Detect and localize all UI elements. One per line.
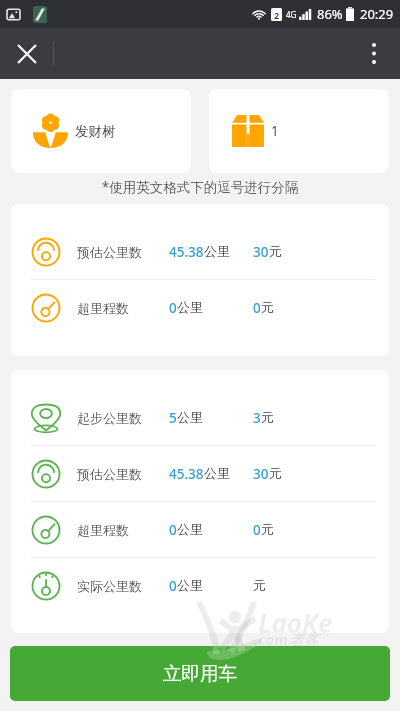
staticText: 20:29: [360, 5, 394, 23]
staticText: 公里: [177, 577, 203, 593]
staticText: 1: [271, 122, 279, 140]
staticText: 30: [253, 243, 269, 261]
staticText: *使用英文格式下的逗号进行分隔: [11, 178, 389, 196]
staticText: 元: [261, 299, 274, 315]
staticText: 0: [253, 521, 261, 539]
staticText: 公里: [177, 521, 203, 537]
staticText: 0: [169, 521, 177, 539]
staticText: 起步公里数: [77, 410, 142, 426]
button[interactable]: 预估公里数: [11, 224, 389, 279]
staticText: 公里: [204, 243, 230, 259]
button[interactable]: 实际公里数: [11, 558, 389, 613]
staticText: 预估公里数: [77, 244, 142, 260]
staticText: .com老客: [254, 629, 318, 649]
staticText: 立即用车: [163, 662, 237, 685]
staticText: 超里程数: [77, 522, 129, 538]
staticText: 超里程数: [77, 300, 129, 316]
staticText: 0: [253, 299, 261, 317]
staticText: LaoKe: [258, 605, 333, 640]
staticText: 元: [253, 577, 266, 593]
button[interactable]: 1: [209, 89, 389, 173]
staticText: 3: [253, 409, 261, 427]
staticText: 5: [169, 409, 177, 427]
staticText: 公里: [204, 465, 230, 481]
button[interactable]: 预估公里数: [11, 446, 389, 501]
staticText: 45.38: [169, 243, 204, 261]
staticText: 0: [169, 577, 177, 595]
staticText: 发财树: [75, 123, 116, 140]
staticText: 元: [269, 465, 282, 481]
staticText: 4G: [286, 9, 297, 20]
staticText: 预估公里数: [77, 466, 142, 482]
staticText: 0: [169, 299, 177, 317]
staticText: 公里: [177, 299, 203, 315]
staticText: 30: [253, 465, 269, 483]
button[interactable]: 立即用车: [10, 646, 390, 701]
staticText: 元: [261, 409, 274, 425]
staticText: 86%: [317, 5, 343, 23]
staticText: 元: [269, 243, 282, 259]
button[interactable]: 起步公里数: [11, 390, 389, 445]
staticText: 实际公里数: [77, 578, 142, 594]
staticText: 元: [261, 521, 274, 537]
button[interactable]: Close: [0, 28, 54, 79]
button[interactable]: More options: [348, 28, 400, 79]
button[interactable]: 发财树: [11, 89, 191, 173]
staticText: 2: [274, 9, 280, 21]
staticText: 45.38: [169, 465, 204, 483]
staticText: 公里: [177, 409, 203, 425]
button[interactable]: 超里程数: [11, 280, 389, 335]
button[interactable]: 超里程数: [11, 502, 389, 557]
